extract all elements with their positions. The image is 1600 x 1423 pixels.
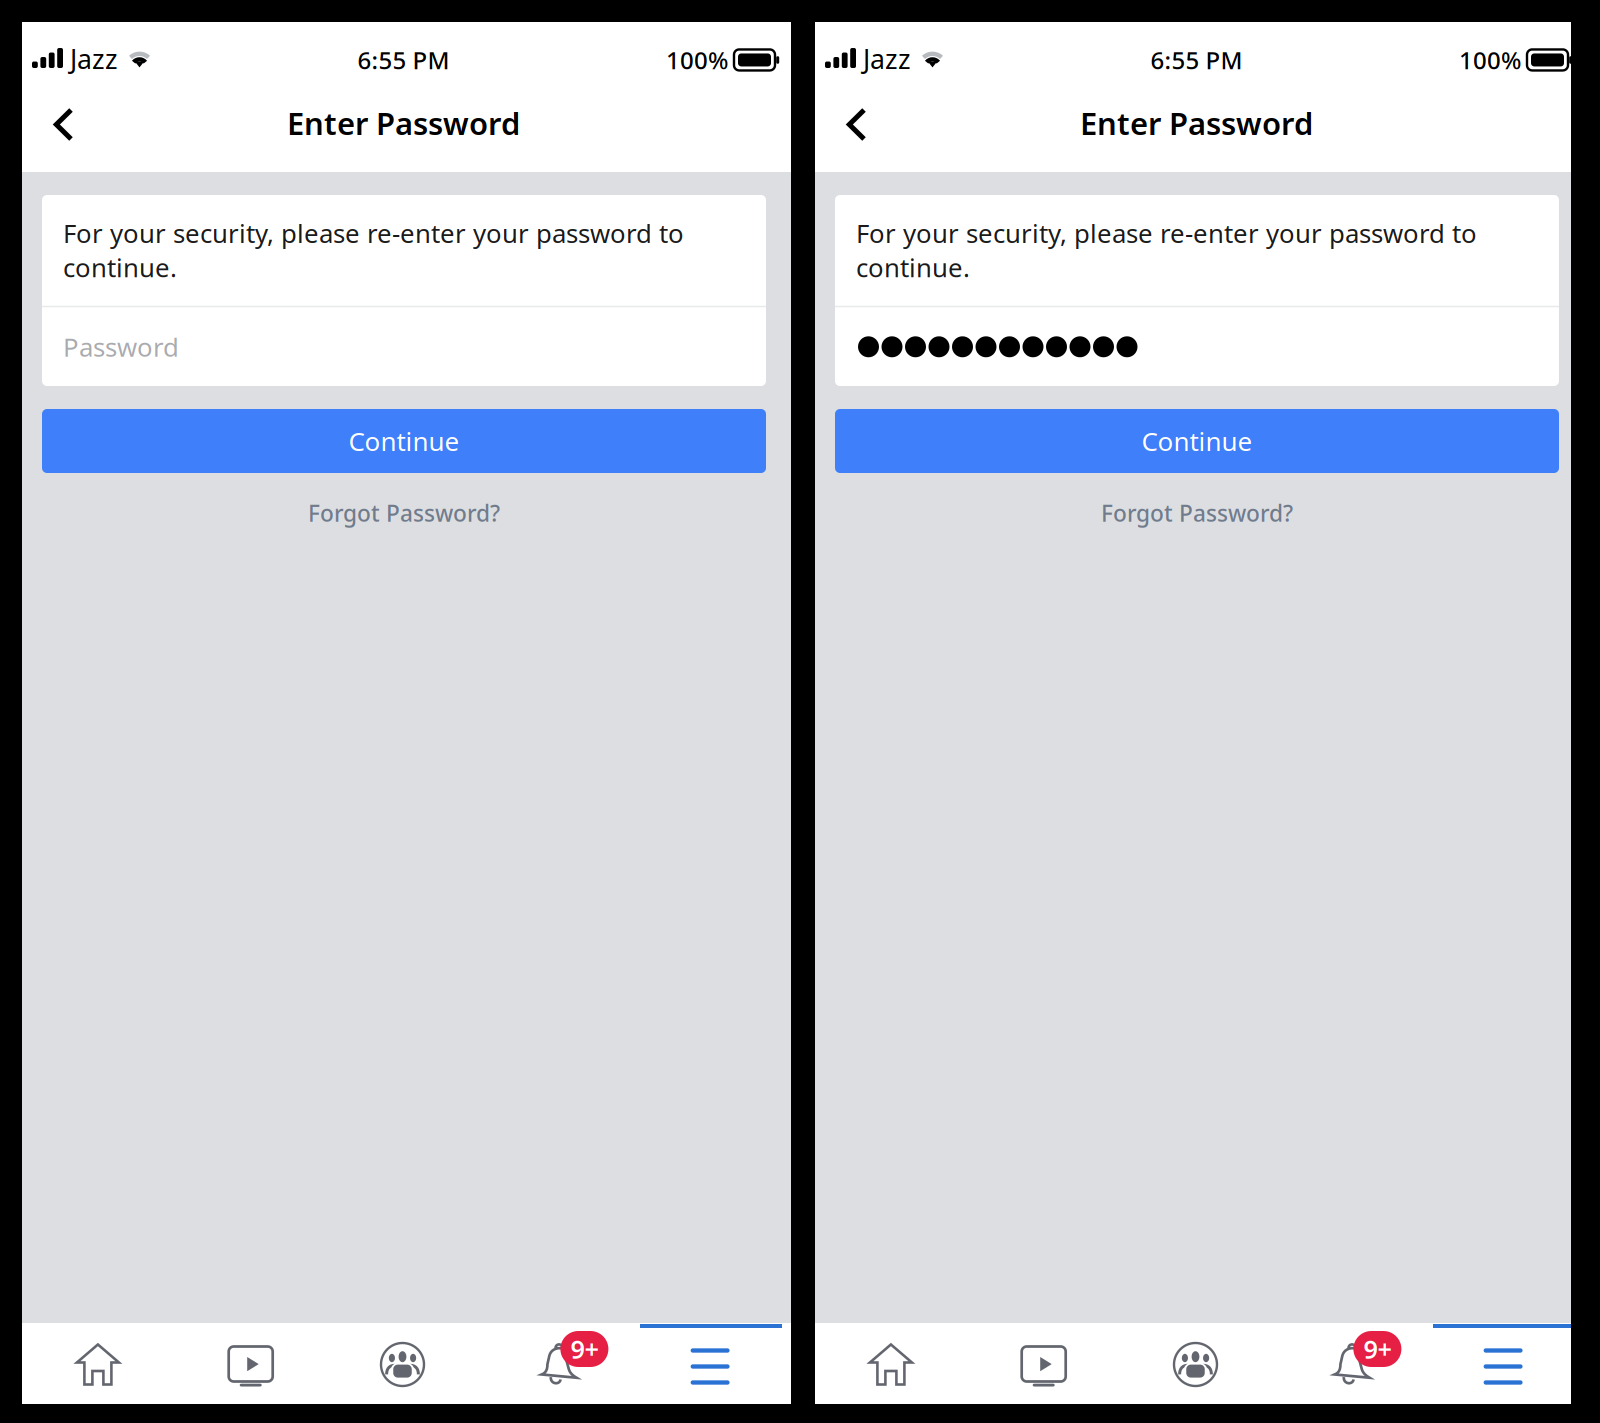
button[interactable]: Password [42, 307, 766, 386]
staticText: For your security, please re-enter your … [63, 216, 684, 284]
staticText: Continue [348, 424, 459, 458]
staticText: Jazz [863, 41, 911, 76]
staticText: 9+ [1363, 1332, 1391, 1366]
button[interactable]: Home [22, 1323, 176, 1404]
button[interactable]: Watch [969, 1323, 1123, 1404]
staticText: 6:55 PM [1150, 44, 1242, 76]
button[interactable]: Groups [1123, 1323, 1276, 1404]
button[interactable]: Continue [42, 409, 766, 473]
button[interactable]: Forgot Password? [835, 473, 1559, 553]
button[interactable]: Continue [835, 409, 1559, 473]
staticText: Enter Password [1080, 102, 1313, 144]
staticText: Enter Password [287, 102, 520, 144]
button[interactable]: Groups [330, 1323, 483, 1404]
button[interactable]: Notifications [483, 1323, 637, 1404]
button[interactable]: Menu [637, 1323, 791, 1404]
button[interactable]: Home [815, 1323, 969, 1404]
staticText: Continue [1141, 424, 1252, 458]
staticText: 6:55 PM [357, 44, 449, 76]
button[interactable]: Back [22, 78, 106, 172]
staticText: For your security, please re-enter your … [856, 216, 1477, 284]
staticText: 9+ [570, 1332, 598, 1366]
staticText: 100% [666, 44, 728, 76]
button[interactable]: Menu [1430, 1323, 1584, 1404]
staticText: Jazz [70, 41, 118, 76]
staticText: Forgot Password? [308, 498, 500, 528]
staticText: Password [63, 330, 179, 364]
button[interactable]: Password [835, 307, 1559, 386]
staticText: Forgot Password? [1101, 498, 1293, 528]
staticText: 100% [1459, 44, 1521, 76]
button[interactable]: Watch [176, 1323, 330, 1404]
button[interactable]: Back [815, 78, 899, 172]
button[interactable]: Notifications [1276, 1323, 1430, 1404]
button[interactable]: Forgot Password? [42, 473, 766, 553]
